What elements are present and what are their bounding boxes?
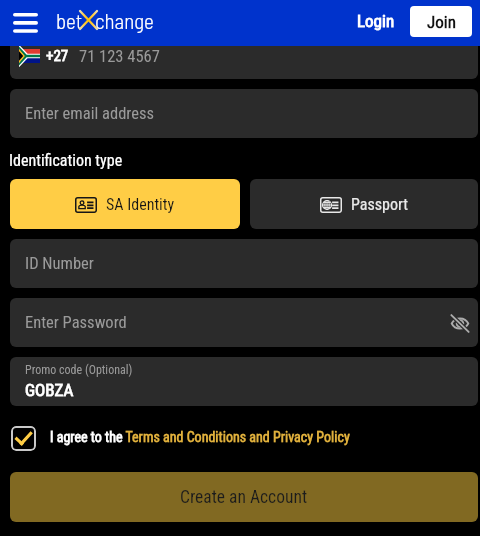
staticText: Create an Account <box>180 487 308 508</box>
button[interactable]: Show password <box>444 307 476 339</box>
staticText: change <box>95 8 154 33</box>
button[interactable]: Menu <box>5 3 45 43</box>
button[interactable]: Enter email address <box>10 89 478 138</box>
staticText: GOBZA <box>25 380 74 400</box>
staticText: I agree to the Terms and Conditions and … <box>50 429 350 445</box>
button[interactable]: Enter Password <box>10 298 478 347</box>
staticText: bet <box>56 8 83 33</box>
button[interactable]: Join <box>410 6 472 37</box>
staticText: +27 <box>46 47 69 65</box>
button[interactable]: Passport <box>250 179 478 229</box>
button[interactable]: ID Number <box>10 239 478 288</box>
button[interactable]: +27 <box>10 46 478 79</box>
staticText: SA Identity <box>106 195 175 214</box>
staticText: Enter Password <box>25 313 127 332</box>
staticText: Promo code (Optional) <box>25 363 133 377</box>
button[interactable]: Promo code (Optional) <box>10 357 478 406</box>
staticText: ID Number <box>25 254 94 273</box>
button[interactable]: Create an Account <box>10 472 478 522</box>
staticText: Login <box>357 11 395 31</box>
button[interactable]: Login <box>350 3 402 39</box>
button[interactable]: I agree to the Terms and Conditions and … <box>11 426 480 451</box>
staticText: Join <box>427 12 456 32</box>
staticText: Identification type <box>9 151 123 170</box>
staticText: Passport <box>351 195 408 214</box>
button[interactable]: SA Identity <box>10 179 240 229</box>
staticText: 71 123 4567 <box>79 47 160 66</box>
staticText: Enter email address <box>25 104 154 123</box>
